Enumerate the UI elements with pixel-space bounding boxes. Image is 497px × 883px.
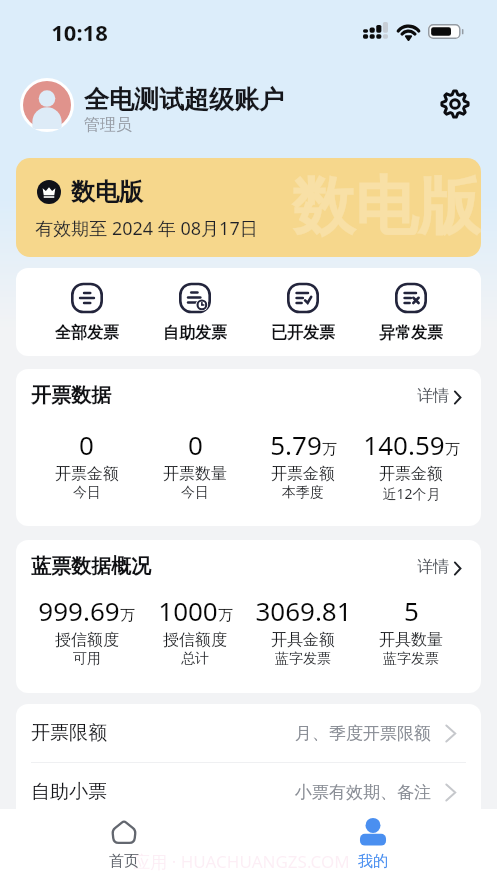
button[interactable]: 自助小票 [16,763,481,821]
staticText: 蓝票数据概况 [31,554,151,579]
button[interactable]: 3069.81 [249,593,357,668]
staticText: 详情 [417,386,449,406]
staticText: 授信额度 [163,630,227,650]
staticText: 开具金额 [271,630,335,650]
staticText: 总计 [181,650,209,668]
staticText: 数电版 [71,177,143,207]
staticText: 本季度 [282,484,324,502]
button[interactable]: 140.59 [357,427,465,503]
staticText: 开票金额 [271,464,335,484]
staticText: 管理员 [84,115,132,135]
button[interactable]: 我的 [248,809,497,871]
staticText: 0 [188,427,203,462]
staticText: 今日 [73,484,101,502]
staticText: 自助发票 [163,323,227,343]
staticText: 异常发票 [379,323,443,343]
button[interactable]: 0 [32,427,141,502]
staticText: 开票金额 [379,464,443,484]
staticText: 万 [120,606,135,625]
staticText: 1000 [158,593,218,628]
button[interactable]: 0 [141,427,249,502]
staticText: 有效期至 2024 年 08月17日 [35,216,258,241]
staticText: 蓝字发票 [275,650,331,668]
staticText: 今日 [181,484,209,502]
staticText: 近12个月 [382,484,441,503]
button[interactable]: 自助发票 [141,278,249,347]
staticText: 应用 · HUACHUANGZS.COM [133,850,350,873]
staticText: 全部发票 [55,323,119,343]
staticText: 授信额度 [55,630,119,650]
button[interactable]: 5 [357,593,465,668]
staticText: 全电测试超级账户 [84,84,284,115]
button[interactable]: 首页 [0,809,248,871]
staticText: 开具数量 [379,630,443,650]
button[interactable]: 1000 [141,593,249,668]
staticText: 3069.81 [255,593,352,628]
button[interactable]: 已开发票 [249,278,357,347]
button[interactable]: 5.79 [249,427,357,502]
staticText: 数电版 [292,167,481,246]
staticText: 蓝字发票 [383,650,439,668]
staticText: 月、季度开票限额 [295,723,431,744]
button[interactable]: Settings [435,84,475,124]
staticText: 可用 [73,650,101,668]
staticText: 开票金额 [55,464,119,484]
staticText: 开票数据 [31,383,111,408]
staticText: 已开发票 [271,323,335,343]
button[interactable]: 开票限额 [16,704,481,762]
staticText: 5.79 [270,427,322,462]
staticText: 自助小票 [31,780,107,804]
button[interactable]: 999.69 [32,593,141,668]
button[interactable]: 全部发票 [32,278,141,347]
button[interactable]: 详情 [415,384,463,408]
staticText: 万 [322,440,337,459]
staticText: 首页 [109,852,139,871]
staticText: 5 [404,593,419,628]
staticText: 10:18 [51,17,108,47]
staticText: 万 [218,606,233,625]
staticText: 我的 [358,852,388,871]
staticText: 140.59 [363,427,445,462]
staticText: 开票限额 [31,721,107,745]
button[interactable]: 数电版 [16,158,481,257]
staticText: 开票数量 [163,464,227,484]
button[interactable]: 详情 [415,555,463,579]
staticText: 详情 [417,557,449,577]
staticText: 999.69 [38,593,120,628]
staticText: 万 [445,440,460,459]
staticText: 小票有效期、备注 [295,782,431,803]
staticText: 0 [79,427,94,462]
button[interactable]: 异常发票 [357,278,465,347]
